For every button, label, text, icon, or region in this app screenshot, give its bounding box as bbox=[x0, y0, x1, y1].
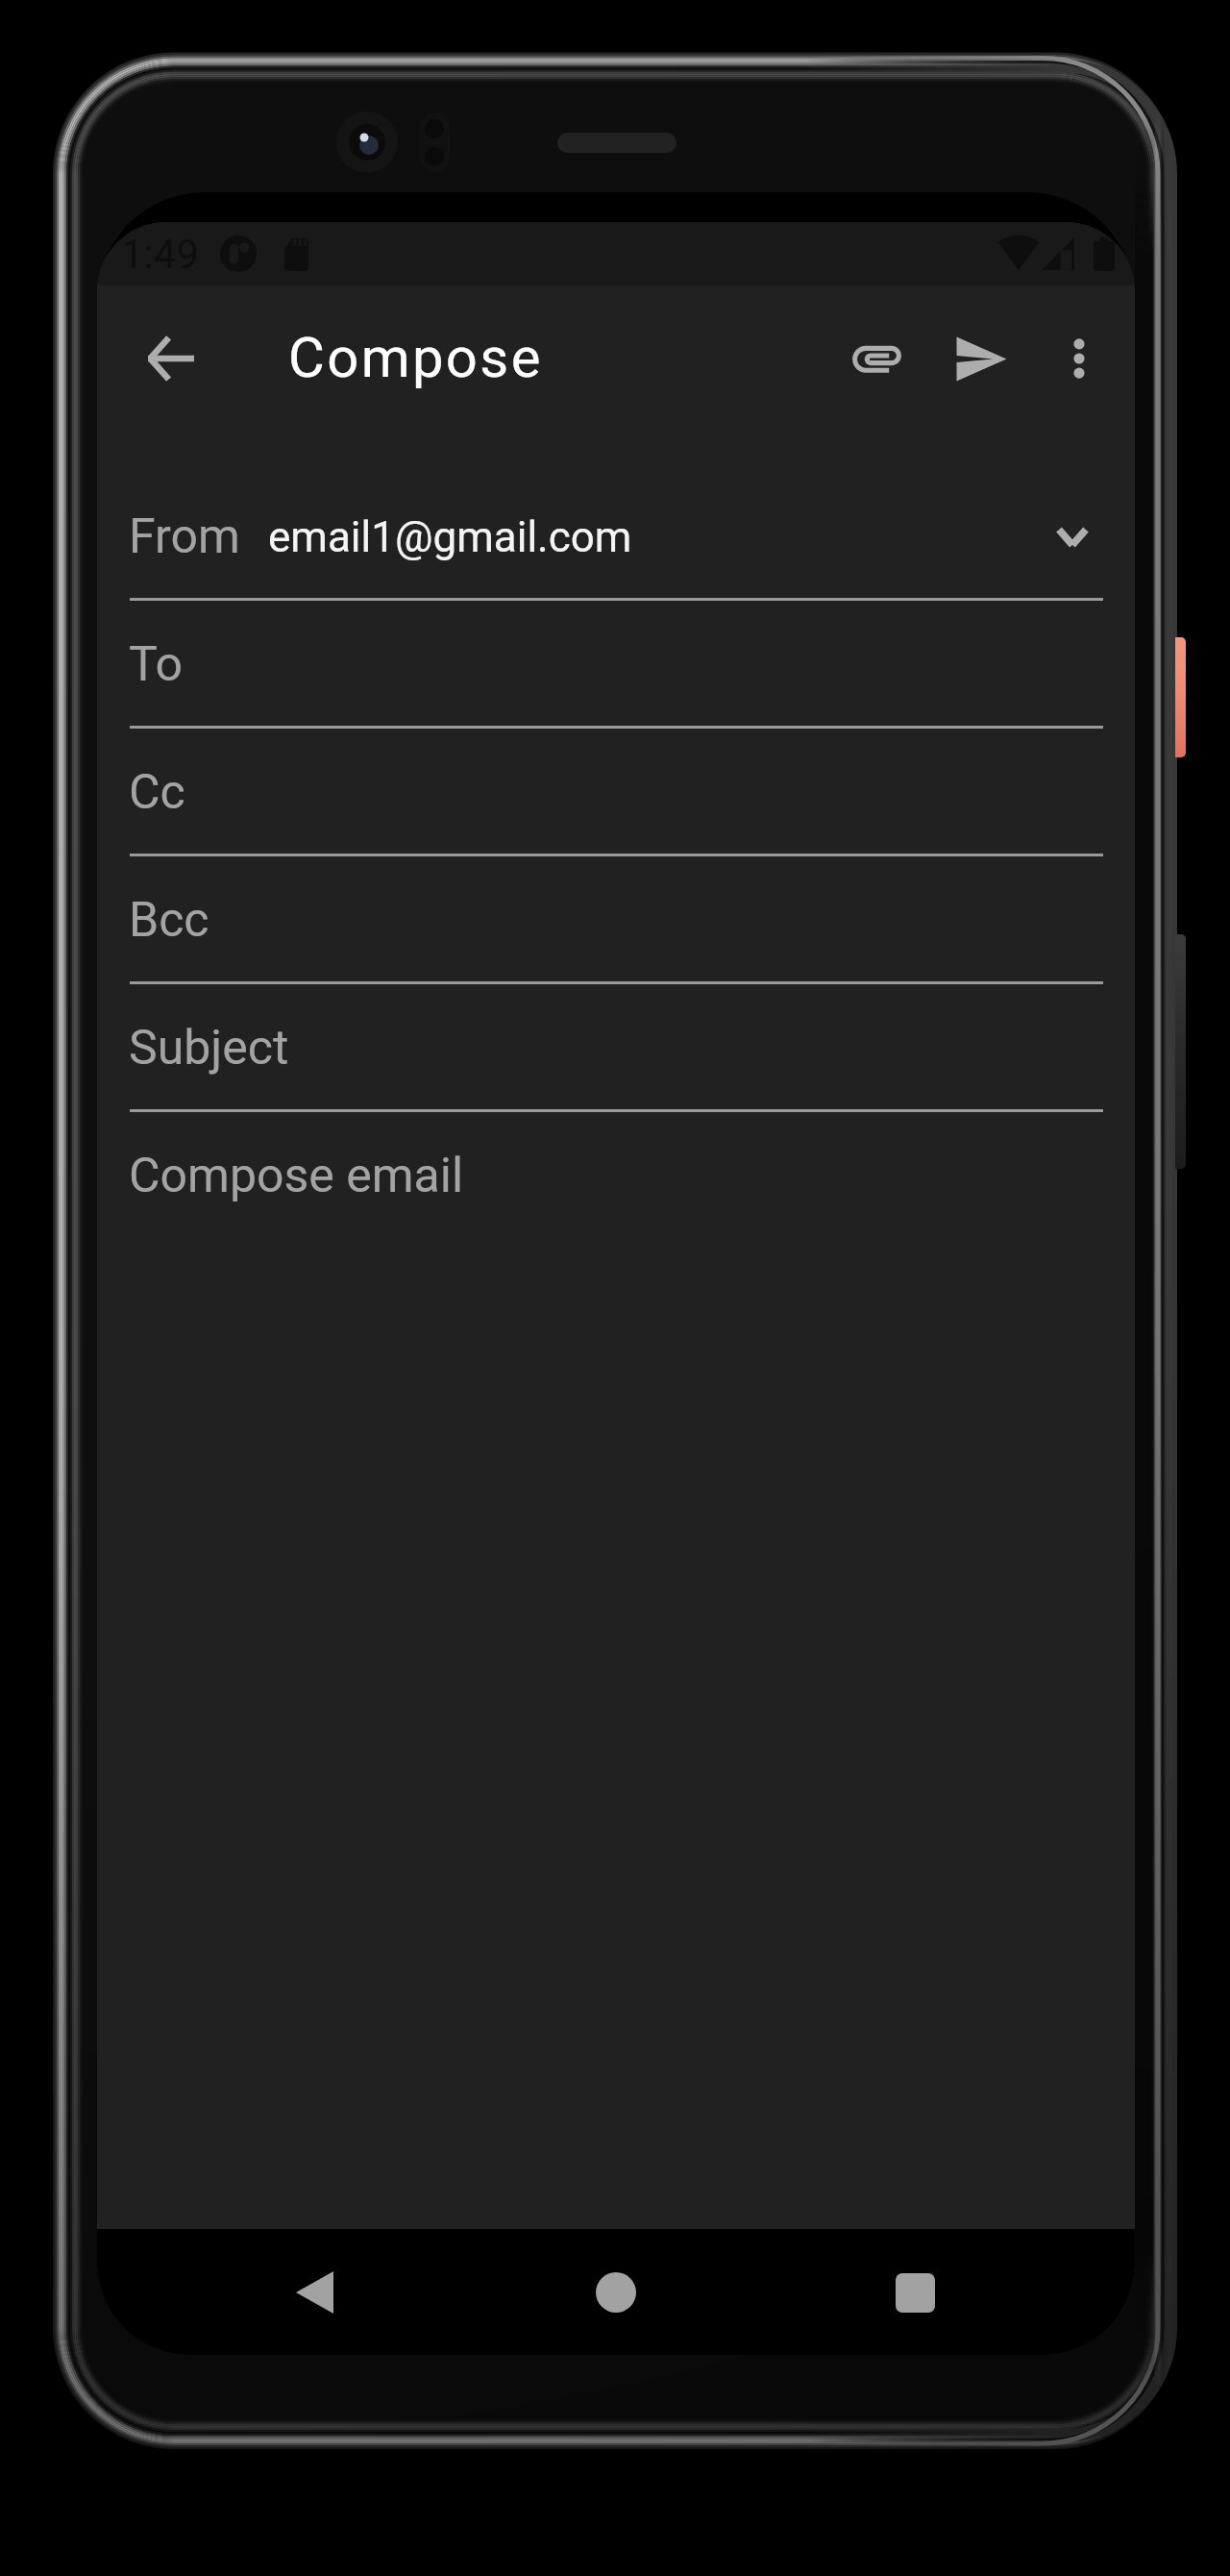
button[interactable]: Compose email bbox=[97, 1112, 1135, 1240]
staticText: Subject bbox=[129, 1020, 289, 1077]
staticText: Compose bbox=[288, 325, 543, 390]
button[interactable]: Home bbox=[572, 2248, 660, 2337]
button[interactable]: More options bbox=[1027, 307, 1131, 410]
staticText: email1@gmail.com bbox=[268, 512, 632, 562]
button[interactable]: Recent apps bbox=[871, 2248, 959, 2337]
button[interactable]: Send bbox=[929, 307, 1033, 410]
staticText: To bbox=[129, 636, 183, 693]
button[interactable]: From bbox=[97, 473, 1135, 601]
button[interactable]: Subject bbox=[97, 984, 1135, 1112]
button[interactable]: Back bbox=[270, 2248, 358, 2337]
staticText: From bbox=[129, 508, 240, 565]
button[interactable]: Bcc bbox=[97, 856, 1135, 984]
staticText: Cc bbox=[129, 764, 185, 821]
button[interactable]: Navigate up bbox=[119, 307, 223, 410]
button[interactable]: Cc bbox=[97, 729, 1135, 856]
staticText: 1:49 bbox=[121, 231, 199, 278]
staticText: Bcc bbox=[129, 892, 209, 949]
staticText: Compose email bbox=[129, 1148, 464, 1204]
button[interactable]: To bbox=[97, 601, 1135, 729]
button[interactable]: Attach file bbox=[824, 307, 928, 410]
